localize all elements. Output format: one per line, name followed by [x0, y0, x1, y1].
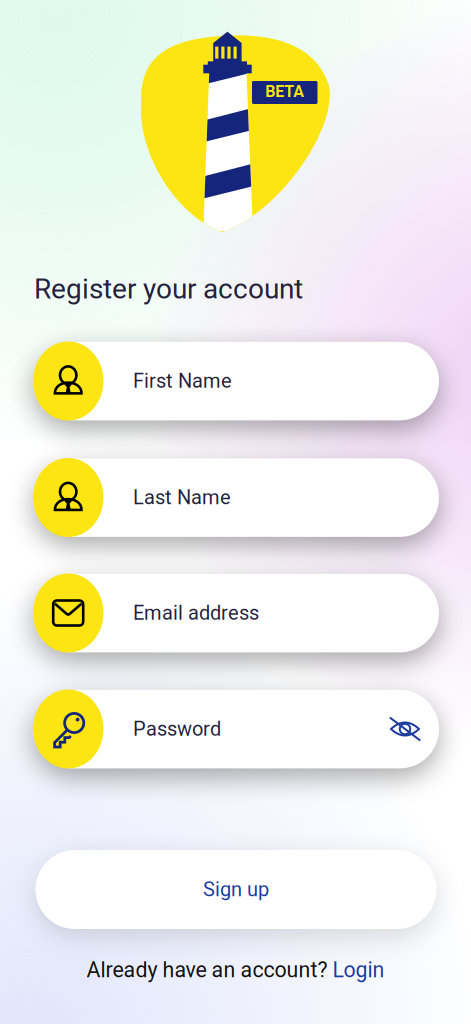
- staticText: Register your account: [34, 273, 303, 305]
- button[interactable]: Login: [332, 957, 384, 982]
- button[interactable]: Sign up: [35, 850, 436, 929]
- staticText: Email address: [133, 601, 259, 625]
- button[interactable]: First Name: [33, 341, 439, 421]
- staticText: Login: [332, 957, 384, 982]
- staticText: Last Name: [133, 486, 231, 509]
- button[interactable]: Password: [33, 689, 439, 769]
- staticText: Sign up: [203, 878, 269, 901]
- staticText: Password: [133, 717, 221, 741]
- staticText: First Name: [133, 369, 232, 393]
- button[interactable]: Last Name: [33, 457, 439, 537]
- staticText: Already have an account?: [86, 957, 332, 982]
- staticText: BETA: [265, 82, 304, 101]
- button[interactable]: Email address: [33, 573, 439, 653]
